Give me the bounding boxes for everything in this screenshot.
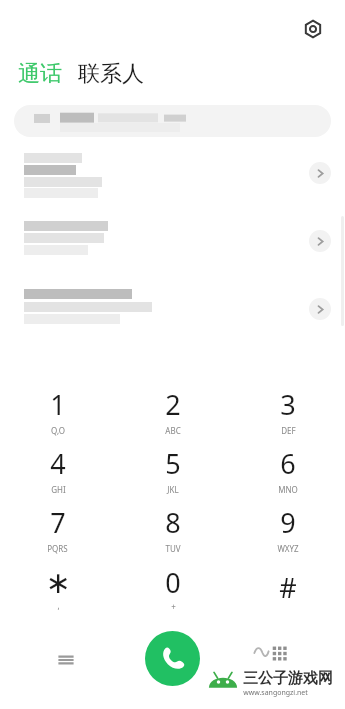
button[interactable]: Details bbox=[0, 147, 345, 199]
staticText: 9 bbox=[280, 504, 296, 541]
button[interactable]: 0 bbox=[115, 558, 230, 617]
button[interactable]: 2 bbox=[115, 381, 230, 440]
button[interactable]: 4 bbox=[0, 440, 115, 499]
staticText: ABC bbox=[165, 425, 181, 436]
staticText: + bbox=[171, 601, 176, 612]
button[interactable]: Dialpad options bbox=[248, 630, 292, 674]
staticText: 7 bbox=[50, 504, 66, 541]
staticText: DEF bbox=[281, 425, 296, 436]
button[interactable]: 联系人 bbox=[76, 58, 146, 90]
button[interactable]: Details bbox=[0, 215, 345, 267]
button[interactable]: 6 bbox=[230, 440, 345, 499]
staticText: PQRS bbox=[47, 543, 68, 554]
button[interactable]: Details bbox=[0, 283, 345, 335]
button[interactable]: Settings bbox=[295, 11, 331, 47]
staticText: , bbox=[57, 600, 60, 611]
staticText: 通话 bbox=[18, 60, 62, 88]
staticText: 3 bbox=[280, 386, 296, 423]
button[interactable]: ∗ bbox=[0, 558, 115, 617]
button[interactable]: Details bbox=[309, 298, 331, 320]
staticText: WXYZ bbox=[277, 543, 299, 554]
staticText: 1 bbox=[50, 386, 66, 423]
staticText: 0 bbox=[165, 564, 181, 601]
staticText: 联系人 bbox=[78, 60, 144, 88]
staticText: JKL bbox=[167, 484, 179, 495]
staticText: # bbox=[279, 569, 297, 606]
button[interactable]: 8 bbox=[115, 499, 230, 558]
button[interactable]: Details bbox=[309, 162, 331, 184]
staticText: 2 bbox=[165, 386, 181, 423]
staticText: 4 bbox=[50, 445, 66, 482]
staticText: TUV bbox=[165, 543, 181, 554]
staticText: 三公子游戏网 bbox=[243, 669, 333, 688]
staticText: MNO bbox=[278, 484, 298, 495]
staticText: www.sangongzi.net bbox=[243, 688, 308, 698]
button[interactable]: 通话 bbox=[16, 58, 64, 90]
staticText: Q,O bbox=[51, 425, 65, 436]
staticText: 5 bbox=[165, 445, 181, 482]
button[interactable]: 7 bbox=[0, 499, 115, 558]
button[interactable]: Call bbox=[145, 631, 200, 686]
button[interactable]: Search bbox=[14, 105, 331, 137]
button[interactable]: Menu bbox=[46, 640, 86, 680]
button[interactable]: 9 bbox=[230, 499, 345, 558]
staticText: GHI bbox=[51, 484, 66, 495]
staticText: ∗ bbox=[45, 565, 71, 600]
button[interactable]: 3 bbox=[230, 381, 345, 440]
staticText: 6 bbox=[280, 445, 296, 482]
button[interactable]: # bbox=[230, 558, 345, 617]
button[interactable]: Details bbox=[309, 230, 331, 252]
staticText: 8 bbox=[165, 504, 181, 541]
button[interactable]: 5 bbox=[115, 440, 230, 499]
button[interactable]: 1 bbox=[0, 381, 115, 440]
